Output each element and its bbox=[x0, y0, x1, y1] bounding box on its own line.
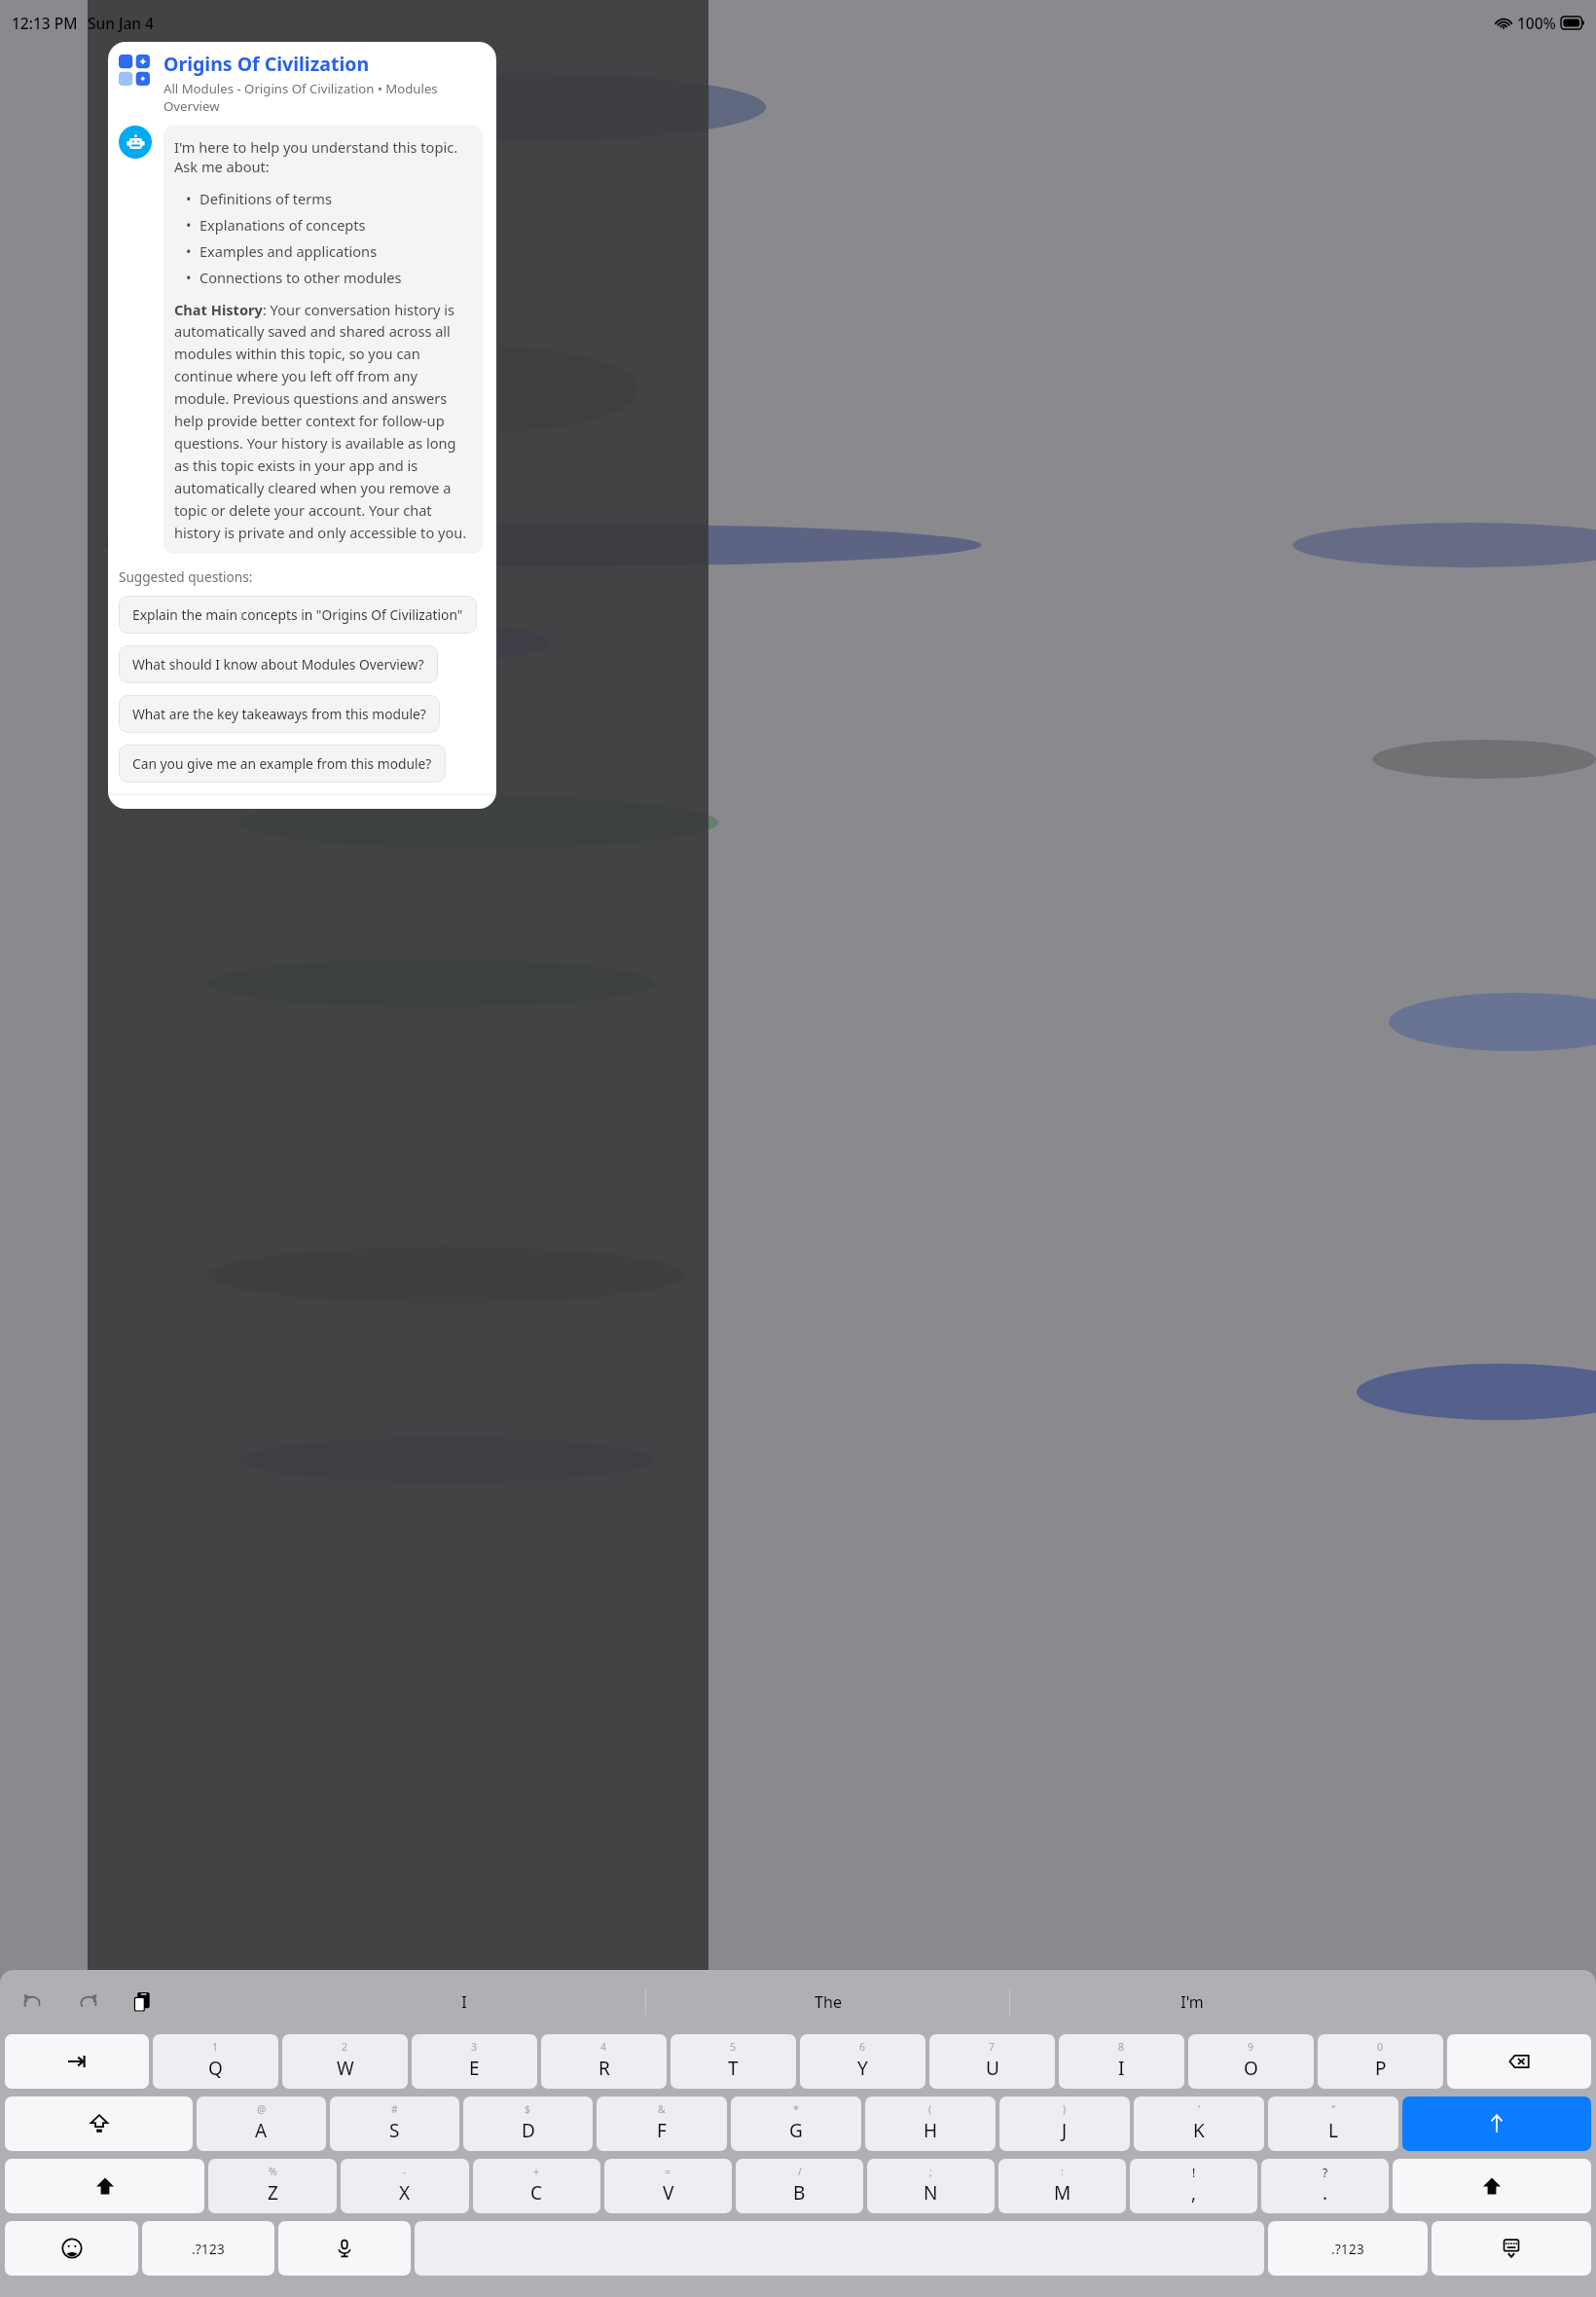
staticText: N bbox=[924, 2180, 938, 2206]
staticText: G bbox=[789, 2118, 803, 2143]
button[interactable]: Undo bbox=[18, 1987, 47, 2017]
button[interactable]: 5 bbox=[671, 2034, 796, 2089]
staticText: O bbox=[1244, 2056, 1258, 2081]
button[interactable]: Numbers bbox=[1268, 2221, 1428, 2276]
button[interactable]: 9 bbox=[1188, 2034, 1314, 2089]
staticText: @ bbox=[257, 2102, 267, 2116]
staticText: F bbox=[657, 2118, 667, 2143]
button[interactable]: ? bbox=[1261, 2159, 1389, 2213]
staticText: % bbox=[269, 2165, 277, 2178]
button[interactable]: What are the key takeaways from this mod… bbox=[119, 695, 440, 733]
button[interactable]: Tab bbox=[5, 2034, 149, 2089]
button[interactable]: I bbox=[282, 1991, 645, 2013]
button[interactable]: Shift bbox=[1393, 2159, 1591, 2213]
button[interactable]: Emoji bbox=[5, 2221, 138, 2276]
button[interactable]: - bbox=[341, 2159, 469, 2213]
button[interactable]: " bbox=[1268, 2096, 1398, 2151]
staticText: • bbox=[186, 268, 199, 287]
staticText: I'm bbox=[1180, 1991, 1204, 2013]
staticText: Explain the main concepts in "Origins Of… bbox=[132, 605, 463, 624]
staticText: : bbox=[1061, 2165, 1064, 2178]
button[interactable]: ( bbox=[865, 2096, 996, 2151]
button[interactable]: 1 bbox=[153, 2034, 278, 2089]
staticText: Connections to other modules bbox=[199, 268, 402, 287]
staticText: 9 bbox=[1248, 2040, 1254, 2054]
button[interactable]: Space bbox=[415, 2221, 1264, 2276]
staticText: 1 bbox=[212, 2040, 219, 2054]
staticText: M bbox=[1054, 2180, 1071, 2206]
staticText: Q bbox=[208, 2056, 223, 2081]
button[interactable]: 6 bbox=[800, 2034, 925, 2089]
button[interactable]: + bbox=[473, 2159, 600, 2213]
staticText: * bbox=[793, 2102, 799, 2116]
button[interactable]: % bbox=[208, 2159, 337, 2213]
button[interactable]: ! bbox=[1130, 2159, 1257, 2213]
staticText: D bbox=[522, 2118, 535, 2143]
button[interactable]: What should I know about Modules Overvie… bbox=[119, 645, 438, 683]
button[interactable]: Paste bbox=[127, 1987, 158, 2018]
staticText: • bbox=[186, 215, 199, 235]
staticText: 4 bbox=[600, 2040, 607, 2054]
button[interactable]: The bbox=[646, 1991, 1009, 2013]
staticText: Y bbox=[857, 2056, 868, 2081]
button[interactable]: $ bbox=[463, 2096, 593, 2151]
staticText: Origins Of Civilization bbox=[163, 51, 370, 77]
staticText: I'm here to help you understand this top… bbox=[174, 137, 472, 177]
staticText: U bbox=[986, 2056, 999, 2081]
staticText: I bbox=[1118, 2056, 1125, 2081]
staticText: 5 bbox=[730, 2040, 737, 2054]
button[interactable]: ' bbox=[1134, 2096, 1264, 2151]
button[interactable]: # bbox=[330, 2096, 459, 2151]
button[interactable]: 2 bbox=[282, 2034, 408, 2089]
button[interactable]: = bbox=[604, 2159, 732, 2213]
staticText: 12:13 PM bbox=[12, 13, 78, 33]
button[interactable]: Shift bbox=[5, 2159, 204, 2213]
button[interactable]: Redo bbox=[74, 1987, 103, 2017]
staticText: P bbox=[1375, 2056, 1387, 2081]
staticText: = bbox=[665, 2165, 671, 2178]
staticText: Explanations of concepts bbox=[199, 215, 366, 235]
staticText: C bbox=[530, 2180, 543, 2206]
button[interactable]: 7 bbox=[929, 2034, 1055, 2089]
staticText: " bbox=[1331, 2102, 1336, 2116]
button[interactable]: Caps lock bbox=[5, 2096, 193, 2151]
button[interactable]: Hide keyboard bbox=[1432, 2221, 1591, 2276]
button[interactable]: : bbox=[998, 2159, 1126, 2213]
button[interactable]: ) bbox=[999, 2096, 1130, 2151]
staticText: # bbox=[391, 2102, 398, 2116]
staticText: 100% bbox=[1517, 13, 1556, 33]
button[interactable]: ; bbox=[867, 2159, 995, 2213]
staticText: 2 bbox=[342, 2040, 348, 2054]
staticText: - bbox=[403, 2165, 407, 2178]
button[interactable]: 8 bbox=[1059, 2034, 1184, 2089]
button[interactable]: / bbox=[736, 2159, 863, 2213]
staticText: 7 bbox=[989, 2040, 996, 2054]
staticText: The bbox=[815, 1991, 842, 2013]
button[interactable]: @ bbox=[197, 2096, 326, 2151]
staticText: + bbox=[533, 2165, 540, 2178]
staticText: ? bbox=[1323, 2165, 1328, 2180]
staticText: R bbox=[598, 2056, 610, 2081]
button[interactable]: Can you give me an example from this mod… bbox=[119, 745, 446, 783]
button[interactable]: & bbox=[597, 2096, 727, 2151]
button[interactable]: 4 bbox=[541, 2034, 667, 2089]
button[interactable]: Backspace bbox=[1447, 2034, 1591, 2089]
staticText: 6 bbox=[859, 2040, 866, 2054]
staticText: .?123 bbox=[1331, 2240, 1364, 2258]
staticText: • bbox=[186, 241, 199, 261]
button[interactable]: Explain the main concepts in "Origins Of… bbox=[119, 596, 477, 634]
staticText: ( bbox=[928, 2102, 932, 2116]
staticText: • bbox=[186, 189, 199, 208]
button[interactable]: Return bbox=[1402, 2096, 1591, 2151]
button[interactable]: 3 bbox=[412, 2034, 537, 2089]
staticText: Z bbox=[268, 2180, 278, 2206]
button[interactable]: 0 bbox=[1318, 2034, 1443, 2089]
button[interactable]: Numbers bbox=[142, 2221, 274, 2276]
button[interactable]: I'm bbox=[1010, 1991, 1373, 2013]
staticText: Suggested questions: bbox=[119, 567, 253, 586]
staticText: What are the key takeaways from this mod… bbox=[132, 705, 426, 723]
staticText: T bbox=[728, 2056, 739, 2081]
staticText: ; bbox=[929, 2165, 932, 2178]
button[interactable]: Dictate bbox=[278, 2221, 411, 2276]
button[interactable]: * bbox=[731, 2096, 861, 2151]
